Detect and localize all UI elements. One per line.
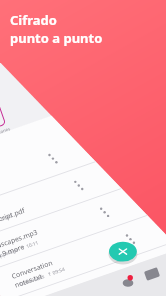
staticText: punto a punto [10,29,103,47]
staticText: Cifrado [10,11,57,29]
